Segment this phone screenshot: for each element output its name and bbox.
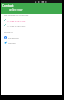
button[interactable]: Call [1, 23, 62, 27]
staticText: online now [9, 8, 23, 12]
other: Call [4, 19, 6, 21]
staticText: Follow us [4, 31, 13, 34]
button[interactable]: Facebook [1, 35, 62, 39]
staticText: Get notified on WhatsApp [4, 14, 29, 17]
button[interactable]: Twitter [1, 40, 62, 44]
staticText: Facebook [8, 36, 19, 39]
staticText: +1 555 0199 384 [7, 24, 26, 27]
button[interactable]: Call [1, 18, 62, 22]
staticText: Twitter [8, 41, 16, 44]
other: Call [4, 24, 6, 26]
staticText: +1 555 0134 102 [7, 19, 26, 22]
button[interactable]: Contact [2, 4, 14, 8]
